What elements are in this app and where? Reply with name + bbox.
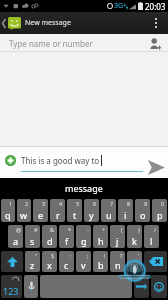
staticText: p xyxy=(157,209,163,221)
button[interactable]: Voice input xyxy=(24,275,38,298)
button[interactable]: x xyxy=(42,251,57,272)
button[interactable]: Symbols xyxy=(1,275,22,298)
staticText: # xyxy=(34,226,38,233)
button[interactable]: w xyxy=(17,199,31,222)
button[interactable]: e xyxy=(33,199,48,222)
staticText: 5 xyxy=(76,200,80,207)
button[interactable]: u xyxy=(101,199,116,222)
staticText: @ xyxy=(16,226,21,233)
staticText: Type name or number xyxy=(9,38,93,49)
button[interactable]: a xyxy=(8,225,23,248)
button[interactable]: Emoji xyxy=(151,275,167,298)
button[interactable]: Shift xyxy=(1,251,23,272)
button[interactable]: h xyxy=(93,225,108,248)
staticText: b xyxy=(98,259,104,271)
button[interactable]: g xyxy=(76,225,91,248)
staticText: l xyxy=(150,235,153,247)
staticText: n xyxy=(115,259,121,271)
staticText: 3 xyxy=(42,200,46,207)
staticText: & xyxy=(50,226,55,233)
button[interactable]: i xyxy=(118,199,133,222)
button[interactable]: Navigate up xyxy=(0,12,23,34)
staticText: ' xyxy=(138,252,140,259)
staticText: 4 xyxy=(59,200,63,207)
button[interactable]: f xyxy=(59,225,74,248)
staticText: v xyxy=(81,259,86,271)
staticText: h xyxy=(98,235,104,247)
staticText: u xyxy=(106,209,112,221)
staticText: ! xyxy=(104,252,106,259)
staticText: g xyxy=(81,235,87,247)
staticText: x xyxy=(47,259,52,271)
staticText: o xyxy=(140,209,146,221)
button[interactable]: Add recipient from contacts xyxy=(146,34,164,52)
button[interactable]: y xyxy=(84,199,99,222)
staticText: 3G xyxy=(114,1,124,11)
staticText: i xyxy=(124,209,127,221)
button[interactable]: t xyxy=(67,199,82,222)
button[interactable]: q xyxy=(1,199,15,222)
staticText: This is a good way to xyxy=(21,155,100,166)
staticText: : xyxy=(70,252,72,259)
button[interactable]: n xyxy=(110,251,125,272)
staticText: / xyxy=(154,226,157,233)
staticText: * xyxy=(68,226,72,233)
staticText: 6 xyxy=(93,200,97,207)
staticText: w xyxy=(20,209,28,221)
staticText: c xyxy=(64,259,69,271)
button[interactable]: o xyxy=(135,199,150,222)
staticText: 20:03 xyxy=(145,1,166,12)
staticText: 1 xyxy=(9,200,13,207)
staticText: e xyxy=(38,209,44,221)
staticText: - xyxy=(87,226,89,233)
staticText: 0 xyxy=(161,200,165,207)
staticText: 2 xyxy=(25,200,29,207)
staticText: s xyxy=(30,235,35,247)
staticText: ( xyxy=(121,226,123,233)
button[interactable]: Enter xyxy=(134,275,149,298)
staticText: ) xyxy=(138,226,140,233)
button[interactable]: r xyxy=(50,199,65,222)
staticText: r xyxy=(56,209,60,221)
staticText: a xyxy=(13,235,19,247)
button[interactable]: Send xyxy=(146,158,167,177)
staticText: ? xyxy=(120,252,123,259)
staticText: j xyxy=(116,235,119,247)
staticText: 7 xyxy=(110,200,114,207)
staticText: 8 xyxy=(127,200,131,207)
button[interactable]: d xyxy=(42,225,57,248)
staticText: 123 xyxy=(3,285,19,297)
staticText: y xyxy=(89,209,94,221)
staticText: + xyxy=(102,226,106,233)
button[interactable]: j xyxy=(110,225,125,248)
staticText: 9 xyxy=(144,200,148,207)
button[interactable]: k xyxy=(127,225,142,248)
staticText: d xyxy=(47,235,53,247)
button[interactable]: v xyxy=(76,251,91,272)
staticText: ; xyxy=(87,252,89,259)
button[interactable]: Backspace xyxy=(144,251,167,272)
button[interactable]: b xyxy=(93,251,108,272)
button[interactable]: m xyxy=(127,251,142,272)
staticText: message xyxy=(65,182,103,194)
button[interactable]: Add attachment xyxy=(4,154,16,166)
staticText: $ xyxy=(51,252,55,259)
button[interactable]: l xyxy=(144,225,159,248)
button[interactable]: s xyxy=(25,225,40,248)
staticText: k xyxy=(132,235,137,247)
staticText: New message xyxy=(25,18,71,28)
button[interactable]: z xyxy=(25,251,40,272)
staticText: z xyxy=(30,259,35,271)
button[interactable]: Space xyxy=(40,275,132,298)
button[interactable]: p xyxy=(152,199,167,222)
staticText: m xyxy=(130,259,139,271)
staticText: q xyxy=(5,209,11,221)
staticText: " xyxy=(35,252,38,259)
staticText: t xyxy=(73,209,77,221)
button[interactable]: More options xyxy=(144,12,168,34)
staticText: f xyxy=(65,235,69,247)
button[interactable]: c xyxy=(59,251,74,272)
